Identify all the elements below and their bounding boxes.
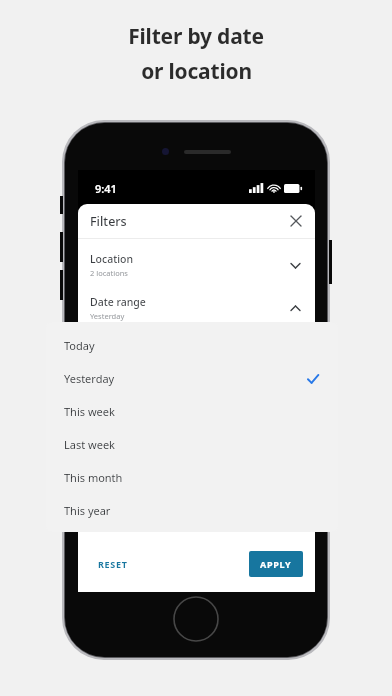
staticText: Last week bbox=[64, 437, 115, 452]
staticText: This week bbox=[64, 404, 115, 419]
button[interactable]: Today bbox=[46, 329, 338, 362]
staticText: 9:41 bbox=[95, 181, 117, 196]
staticText: Today bbox=[64, 338, 95, 353]
staticText: RESET bbox=[98, 558, 128, 570]
staticText: Filters bbox=[90, 213, 127, 230]
staticText: 2 locations bbox=[90, 268, 128, 278]
button[interactable]: This year bbox=[46, 494, 338, 527]
staticText: Location bbox=[90, 252, 134, 266]
button[interactable]: This month bbox=[46, 461, 338, 494]
staticText: APPLY bbox=[260, 558, 292, 570]
staticText: Yesterday bbox=[90, 311, 125, 321]
button[interactable]: RESET bbox=[90, 552, 136, 576]
button[interactable]: Yesterday bbox=[46, 362, 338, 395]
button[interactable]: Last week bbox=[46, 428, 338, 461]
button[interactable]: Filters bbox=[78, 204, 315, 238]
button[interactable]: Date range bbox=[78, 291, 315, 325]
staticText: Date range bbox=[90, 295, 146, 309]
staticText: This year bbox=[64, 503, 111, 518]
staticText: This month bbox=[64, 470, 123, 485]
staticText: or location bbox=[141, 57, 252, 86]
button[interactable]: Close bbox=[285, 210, 307, 232]
staticText: Yesterday bbox=[64, 371, 115, 386]
button[interactable]: Location bbox=[78, 248, 315, 282]
button[interactable]: APPLY bbox=[249, 551, 303, 577]
button[interactable]: This week bbox=[46, 395, 338, 428]
staticText: Filter by date bbox=[128, 22, 264, 51]
